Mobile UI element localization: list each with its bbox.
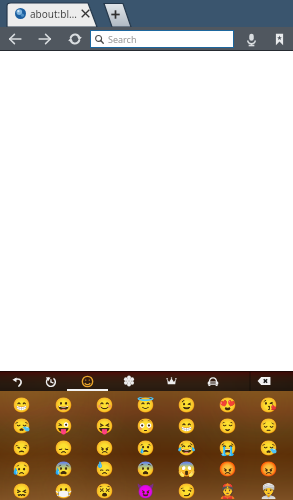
button[interactable]: 😭 [207, 438, 248, 459]
staticText: 😱 [177, 461, 196, 478]
button[interactable]: 😰 [42, 459, 84, 480]
button[interactable]: 😒 [0, 438, 42, 459]
button[interactable]: New tab [108, 7, 123, 22]
button[interactable]: Nature [108, 371, 150, 391]
staticText: 😷 [54, 483, 73, 500]
button[interactable]: 😏 [166, 481, 207, 500]
button[interactable]: 😢 [125, 438, 166, 459]
button[interactable]: 😁 [0, 395, 42, 416]
button[interactable]: 😳 [125, 416, 166, 437]
button[interactable]: 😍 [207, 395, 248, 416]
staticText: 👳 [259, 483, 278, 500]
button[interactable]: 😉 [166, 395, 207, 416]
staticText: 😞 [54, 440, 73, 457]
staticText: 👲 [218, 483, 237, 500]
button[interactable]: 😊 [84, 395, 125, 416]
button[interactable]: 😷 [42, 481, 84, 500]
button[interactable]: Objects [150, 371, 192, 391]
button[interactable]: 👳 [248, 481, 289, 500]
staticText: 😁 [12, 397, 31, 414]
staticText: 😢 [136, 440, 155, 457]
button[interactable]: 😁 [166, 416, 207, 437]
button[interactable]: 😪 [248, 438, 289, 459]
button[interactable]: 😇 [125, 395, 166, 416]
button[interactable]: Backspace [234, 371, 293, 391]
button[interactable]: 😥 [0, 459, 42, 480]
staticText: 😁 [177, 418, 196, 435]
staticText: about:bl… [30, 7, 77, 21]
button[interactable]: Back [0, 27, 30, 51]
staticText: 😘 [259, 397, 278, 414]
staticText: 😜 [54, 418, 73, 435]
button[interactable]: Smileys [67, 371, 108, 391]
button[interactable]: Bookmarks [265, 27, 293, 51]
button[interactable]: Recently used [34, 371, 67, 391]
button[interactable]: 😵 [84, 481, 125, 500]
button[interactable]: 😡 [248, 459, 289, 480]
button[interactable]: 😘 [248, 395, 289, 416]
staticText: 😀 [54, 397, 73, 414]
button[interactable]: 😨 [125, 459, 166, 480]
button[interactable]: 😌 [207, 416, 248, 437]
staticText: 😪 [12, 418, 31, 435]
button[interactable]: 😂 [166, 438, 207, 459]
button[interactable]: 😪 [0, 416, 42, 437]
staticText: 😝 [95, 418, 114, 435]
staticText: 😪 [259, 440, 278, 457]
button[interactable]: Undo [0, 371, 34, 391]
button[interactable]: 😔 [248, 416, 289, 437]
button[interactable]: Reload [60, 27, 90, 51]
button[interactable]: 😠 [84, 438, 125, 459]
staticText: 😇 [136, 397, 155, 414]
button[interactable]: 😓 [84, 459, 125, 480]
button[interactable]: Voice search [238, 27, 265, 51]
button[interactable]: Places [192, 371, 234, 391]
staticText: 😂 [177, 440, 196, 457]
button[interactable]: 😝 [84, 416, 125, 437]
button[interactable]: 😖 [0, 481, 42, 500]
button[interactable]: 😀 [42, 395, 84, 416]
button[interactable]: 😡 [207, 459, 248, 480]
staticText: 😓 [95, 461, 114, 478]
button[interactable]: 😱 [166, 459, 207, 480]
staticText: 😳 [136, 418, 155, 435]
button[interactable]: Forward [30, 27, 60, 51]
staticText: 😉 [177, 397, 196, 414]
button[interactable]: 😈 [125, 481, 166, 500]
staticText: 😌 [218, 418, 237, 435]
staticText: 😭 [218, 440, 237, 457]
staticText: 😠 [95, 440, 114, 457]
button[interactable]: 👲 [207, 481, 248, 500]
staticText: 😨 [136, 461, 155, 478]
staticText: 😍 [218, 397, 237, 414]
staticText: 😖 [12, 483, 31, 500]
button[interactable]: Search [90, 30, 234, 48]
staticText: 😈 [136, 483, 155, 500]
staticText: 😊 [95, 397, 114, 414]
staticText: 😡 [259, 461, 278, 478]
button[interactable]: Close tab [78, 6, 93, 21]
staticText: 😒 [12, 440, 31, 457]
button[interactable]: 😞 [42, 438, 84, 459]
staticText: 😔 [259, 418, 278, 435]
staticText: 😡 [218, 461, 237, 478]
staticText: 😵 [95, 483, 114, 500]
staticText: 😥 [12, 461, 31, 478]
staticText: 😏 [177, 483, 196, 500]
staticText: Search [108, 33, 137, 45]
staticText: 😰 [54, 461, 73, 478]
button[interactable]: 😜 [42, 416, 84, 437]
